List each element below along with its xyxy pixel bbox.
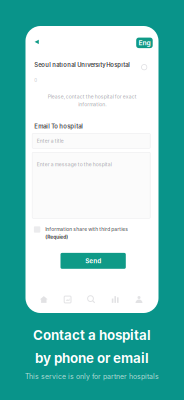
staticText: 0 xyxy=(34,77,37,83)
button[interactable]: Search xyxy=(79,296,103,303)
button[interactable]: Statistics xyxy=(103,296,127,303)
staticText: Enter a title xyxy=(37,138,64,144)
staticText: Information share with third parties xyxy=(45,226,128,232)
button[interactable]: Send xyxy=(60,253,126,269)
button[interactable]: Home xyxy=(32,296,56,303)
staticText: (Requied) xyxy=(45,234,68,240)
staticText: Email To hospital xyxy=(34,123,83,130)
button[interactable]: Information share with third parties xyxy=(34,226,152,240)
staticText: This service is only for partner hospita… xyxy=(25,372,159,381)
staticText: Seoul national University Hospital xyxy=(34,61,130,68)
staticText: Send xyxy=(85,257,101,265)
staticText: by phone or email xyxy=(35,350,149,366)
button[interactable]: Back xyxy=(31,36,43,48)
button[interactable]: Records xyxy=(56,296,79,303)
button[interactable]: Profile xyxy=(127,296,151,303)
button[interactable]: Eng xyxy=(136,38,153,48)
staticText: Contact a hospital xyxy=(33,327,151,343)
staticText: Enter a message to the hospital xyxy=(37,161,112,167)
staticText: Eng xyxy=(138,39,150,47)
staticText: Please, contact the hospital for exact i… xyxy=(47,94,136,107)
